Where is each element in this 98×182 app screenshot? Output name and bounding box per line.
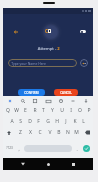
staticText: R xyxy=(33,107,37,114)
button[interactable]: J xyxy=(61,116,70,127)
staticText: V xyxy=(48,129,52,136)
button[interactable]: Toggle theme xyxy=(78,26,88,36)
button[interactable]: A xyxy=(8,116,16,127)
button[interactable]: R xyxy=(30,105,39,116)
button[interactable]: O xyxy=(75,105,84,116)
button[interactable]: Back xyxy=(10,26,21,37)
button[interactable]: CONFIRM xyxy=(18,89,45,96)
staticText: Z xyxy=(19,129,22,136)
button[interactable]: N xyxy=(63,127,72,138)
staticText: Type your Name Here xyxy=(11,61,46,66)
button[interactable]: Keyboard tool xyxy=(80,97,92,105)
staticText: , xyxy=(18,146,20,152)
staticText: S xyxy=(19,118,22,125)
button[interactable]: B xyxy=(54,127,63,138)
button[interactable]: C xyxy=(35,127,45,138)
button[interactable]: E xyxy=(21,105,30,116)
staticText: . xyxy=(76,146,78,152)
button[interactable]: Recent apps xyxy=(68,159,78,169)
button[interactable]: H xyxy=(52,116,61,127)
staticText: C xyxy=(38,129,42,136)
button[interactable]: S xyxy=(16,116,25,127)
button[interactable]: T xyxy=(39,105,48,116)
button[interactable]: I xyxy=(66,105,75,116)
staticText: A xyxy=(10,118,14,125)
button[interactable]: W xyxy=(12,105,21,116)
staticText: G xyxy=(46,118,50,125)
staticText: L xyxy=(82,118,85,125)
button[interactable]: Backspace xyxy=(81,127,93,138)
staticText: J xyxy=(65,118,67,125)
staticText: E xyxy=(24,107,27,114)
staticText: H xyxy=(55,118,59,125)
staticText: Q xyxy=(6,107,10,114)
staticText: ?123 xyxy=(6,146,13,150)
staticText: T xyxy=(42,107,45,114)
staticText: K xyxy=(73,118,77,125)
staticText: W xyxy=(14,107,19,114)
button[interactable]: F xyxy=(34,116,43,127)
button[interactable]: G xyxy=(43,116,52,127)
button[interactable]: Shift xyxy=(3,127,15,138)
button[interactable]: Space xyxy=(24,145,72,152)
button[interactable]: Type your Name Here xyxy=(8,59,77,67)
staticText: M xyxy=(74,129,79,136)
staticText: Attempt - xyxy=(37,46,57,52)
staticText: CONFIRM xyxy=(24,91,39,95)
button[interactable]: ?123 xyxy=(3,138,15,158)
button[interactable]: Y xyxy=(48,105,57,116)
staticText: B xyxy=(57,129,61,136)
button[interactable]: C xyxy=(45,28,51,34)
button[interactable]: K xyxy=(70,116,79,127)
button[interactable]: Keyboard tool xyxy=(29,97,41,105)
staticText: X xyxy=(29,129,32,136)
button[interactable]: Back xyxy=(18,159,28,169)
staticText: P xyxy=(87,107,91,114)
button[interactable]: Q xyxy=(3,105,12,116)
staticText: U xyxy=(60,107,64,114)
button[interactable]: D xyxy=(25,116,34,127)
button[interactable]: Keyboard tool xyxy=(67,97,79,105)
button[interactable]: P xyxy=(84,105,93,116)
button[interactable]: Keyboard tool xyxy=(42,97,54,105)
button[interactable]: U xyxy=(57,105,66,116)
button[interactable]: CANCEL xyxy=(54,89,78,96)
button[interactable]: Voice input xyxy=(80,59,88,67)
button[interactable]: Keyboard tool xyxy=(55,97,67,105)
staticText: F xyxy=(37,118,40,125)
staticText: N xyxy=(66,129,70,136)
staticText: CANCEL xyxy=(60,91,72,95)
staticText: C xyxy=(45,28,48,34)
button[interactable]: Z xyxy=(15,127,25,138)
button[interactable]: Enter xyxy=(80,138,93,158)
button[interactable]: L xyxy=(79,116,88,127)
button[interactable]: Keyboard tool xyxy=(17,97,29,105)
button[interactable]: V xyxy=(45,127,54,138)
staticText: Y xyxy=(51,107,54,114)
staticText: I xyxy=(70,107,72,114)
button[interactable]: Home xyxy=(43,159,53,169)
staticText: 2 xyxy=(57,46,60,52)
button[interactable]: M xyxy=(72,127,81,138)
staticText: O xyxy=(78,107,82,114)
button[interactable]: Keyboard tool xyxy=(4,97,16,105)
staticText: D xyxy=(28,118,32,125)
button[interactable]: X xyxy=(25,127,35,138)
button[interactable]: Comma xyxy=(15,138,23,158)
